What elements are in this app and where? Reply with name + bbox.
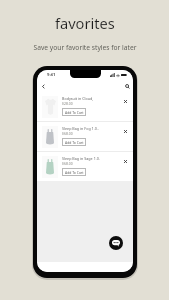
button[interactable]: Remove	[120, 126, 130, 136]
staticText: $68.00	[62, 161, 73, 166]
button[interactable]: Remove	[120, 156, 130, 166]
staticText: Sleep Bag in Sage 1.0.	[62, 156, 100, 161]
button[interactable]: Add To Cart	[62, 108, 86, 116]
button[interactable]: Chat	[109, 236, 123, 250]
staticText: Sleep Bag in Fog 1.0..	[62, 126, 99, 131]
button[interactable]: Bodysuit in Cloud,	[37, 92, 133, 121]
staticText: Add To Cart	[65, 170, 84, 175]
staticText: $28.00	[62, 101, 73, 106]
button[interactable]: Sleep Bag in Fog 1.0..	[37, 122, 133, 151]
staticText: 9:41	[47, 72, 56, 78]
staticText: $68.00	[62, 131, 73, 136]
staticText: Bodysuit in Cloud,	[62, 96, 94, 101]
button[interactable]: Search	[121, 80, 133, 92]
staticText: Save your favorite styles for later	[33, 43, 137, 52]
button[interactable]: Back	[37, 80, 49, 92]
staticText: Add To Cart	[65, 140, 84, 145]
button[interactable]: Sleep Bag in Sage 1.0.	[37, 152, 133, 181]
button[interactable]: Remove	[120, 96, 130, 106]
button[interactable]: Add To Cart	[62, 168, 86, 176]
button[interactable]: Add To Cart	[62, 138, 86, 146]
staticText: favorites	[55, 13, 115, 33]
staticText: Add To Cart	[65, 110, 84, 115]
